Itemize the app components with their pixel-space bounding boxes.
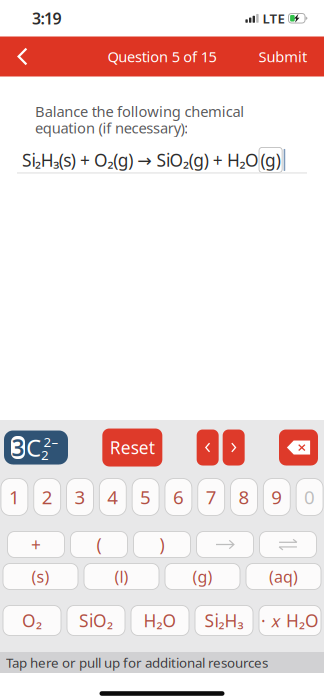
- staticText: LTE: [262, 9, 284, 27]
- staticText: 2–: [43, 433, 58, 451]
- button[interactable]: 2: [34, 478, 61, 515]
- button[interactable]: Next: [223, 429, 245, 465]
- button[interactable]: 5: [132, 478, 159, 515]
- button[interactable]: 4: [99, 478, 126, 515]
- button[interactable]: 6: [165, 478, 192, 515]
- button[interactable]: 7: [198, 478, 225, 515]
- staticText: 3: [11, 432, 24, 462]
- button[interactable]: Delete: [279, 429, 318, 465]
- button[interactable]: Back: [0, 36, 45, 76]
- button[interactable]: Previous: [197, 429, 219, 465]
- staticText: 7: [206, 485, 217, 509]
- staticText: ): [159, 533, 164, 556]
- button[interactable]: (aq): [246, 563, 321, 589]
- staticText: (: [96, 533, 101, 556]
- staticText: C: [26, 432, 41, 463]
- button[interactable]: 9: [263, 478, 290, 515]
- button[interactable]: 8: [231, 478, 257, 515]
- staticText: Reset: [110, 436, 155, 459]
- button[interactable]: +: [7, 531, 64, 557]
- button[interactable]: SiO₂: [67, 605, 125, 635]
- staticText: 2: [42, 485, 53, 509]
- button[interactable]: [196, 531, 253, 557]
- staticText: Si₂H₃(s) + O₂(g) → SiO₂(g) + H₂O: [22, 148, 259, 171]
- button[interactable]: Tap here or pull up for additional resou…: [0, 652, 324, 673]
- button[interactable]: Submit: [258, 36, 324, 76]
- staticText: Tap here or pull up for additional resou…: [6, 654, 268, 671]
- staticText: H₂O: [143, 609, 176, 632]
- staticText: 3: [74, 485, 85, 509]
- staticText: Submit: [258, 47, 307, 66]
- staticText: 2: [41, 446, 49, 464]
- staticText: (aq): [269, 566, 298, 587]
- staticText: (g): [260, 148, 281, 171]
- staticText: 8: [238, 485, 249, 509]
- button[interactable]: O₂: [3, 605, 61, 635]
- button[interactable]: 1: [1, 478, 28, 515]
- staticText: O₂: [22, 609, 42, 632]
- staticText: 6: [173, 485, 184, 509]
- staticText: · 𝑥 H₂O: [261, 609, 319, 632]
- staticText: (s): [31, 566, 49, 587]
- staticText: Balance the following chemical: [35, 101, 244, 121]
- button[interactable]: 0: [296, 478, 323, 515]
- button[interactable]: (s): [3, 563, 78, 589]
- staticText: SiO₂: [79, 609, 113, 632]
- button[interactable]: (g): [165, 563, 240, 589]
- staticText: +: [31, 533, 41, 556]
- button[interactable]: Reset: [102, 428, 162, 466]
- staticText: 4: [107, 485, 118, 509]
- staticText: 1: [9, 485, 20, 509]
- staticText: 0: [304, 485, 315, 509]
- button[interactable]: 3: [4, 430, 68, 464]
- button[interactable]: ): [133, 531, 190, 557]
- staticText: (g): [192, 566, 212, 587]
- staticText: equation (if necessary):: [35, 118, 188, 137]
- button[interactable]: [259, 531, 316, 557]
- button[interactable]: (l): [84, 563, 159, 589]
- button[interactable]: H₂O: [131, 605, 189, 635]
- button[interactable]: · 𝑥 H₂O: [259, 605, 321, 635]
- staticText: 5: [140, 485, 151, 509]
- staticText: Si₂H₃: [204, 609, 243, 632]
- staticText: (l): [114, 566, 128, 587]
- button[interactable]: 3: [66, 478, 93, 515]
- button[interactable]: (: [70, 531, 127, 557]
- staticText: Question 5 of 15: [107, 47, 216, 66]
- staticText: 3:19: [32, 8, 61, 29]
- staticText: 9: [271, 485, 282, 509]
- button[interactable]: Si₂H₃: [195, 605, 253, 635]
